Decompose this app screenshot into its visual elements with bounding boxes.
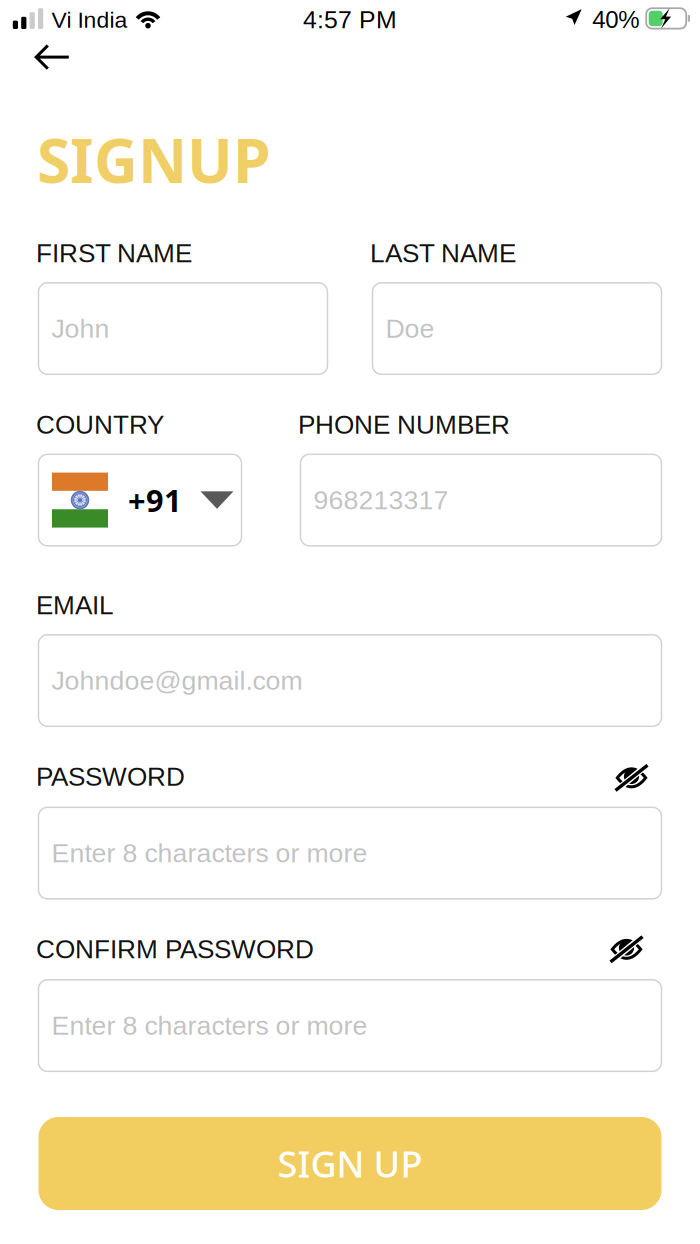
button[interactable]: Enter 8 characters or more xyxy=(38,807,661,899)
staticText: John xyxy=(51,314,109,343)
staticText: COUNTRY xyxy=(36,410,164,439)
staticText: LAST NAME xyxy=(370,239,516,268)
staticText: PHONE NUMBER xyxy=(298,410,510,439)
staticText: CONFIRM PASSWORD xyxy=(36,935,314,964)
staticText: +91 xyxy=(128,479,182,521)
button[interactable]: Show password xyxy=(602,928,650,970)
button[interactable]: SIGN UP xyxy=(38,1117,661,1210)
staticText: Johndoe@gmail.com xyxy=(51,666,302,695)
button[interactable]: Back xyxy=(20,34,87,87)
staticText: PASSWORD xyxy=(36,762,185,791)
button[interactable]: 968213317 xyxy=(300,454,661,546)
staticText: Vi India xyxy=(51,7,127,33)
button[interactable]: Show password xyxy=(607,757,655,799)
staticText: SIGN UP xyxy=(277,1139,422,1188)
button[interactable]: Johndoe@gmail.com xyxy=(38,635,661,726)
button[interactable]: Doe xyxy=(372,283,661,374)
staticText: SIGNUP xyxy=(37,118,271,201)
staticText: 4:57 PM xyxy=(303,6,397,33)
button[interactable]: Country code, India, plus 91 xyxy=(38,454,241,546)
staticText: 40% xyxy=(592,6,639,33)
staticText: Enter 8 characters or more xyxy=(51,1011,367,1040)
staticText: FIRST NAME xyxy=(36,239,192,268)
staticText: EMAIL xyxy=(36,591,114,620)
staticText: Doe xyxy=(385,314,434,343)
staticText: 968213317 xyxy=(313,485,448,515)
button[interactable]: Enter 8 characters or more xyxy=(38,980,661,1071)
staticText: Enter 8 characters or more xyxy=(51,838,367,868)
button[interactable]: John xyxy=(38,283,327,374)
